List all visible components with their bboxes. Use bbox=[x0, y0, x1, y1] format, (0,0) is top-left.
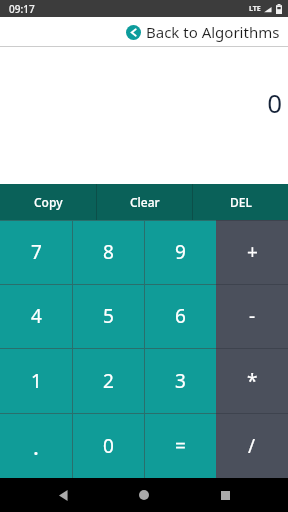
button[interactable]: Back bbox=[47, 478, 81, 512]
staticText: 7 bbox=[31, 239, 42, 265]
button[interactable]: * bbox=[216, 348, 288, 413]
button[interactable]: Back bbox=[118, 20, 288, 44]
button[interactable]: DEL bbox=[193, 184, 288, 220]
staticText: 2 bbox=[103, 368, 114, 394]
staticText: 8 bbox=[103, 239, 114, 265]
other: Back bbox=[126, 25, 141, 40]
button[interactable]: - bbox=[216, 284, 288, 348]
staticText: + bbox=[247, 239, 258, 265]
staticText: 09:17 bbox=[9, 2, 35, 16]
staticText: Back to Algorithms bbox=[146, 22, 280, 42]
staticText: DEL bbox=[230, 194, 252, 210]
button[interactable]: 3 bbox=[144, 348, 216, 413]
button[interactable]: 8 bbox=[72, 220, 144, 284]
staticText: 5 bbox=[103, 303, 114, 329]
staticText: LTE bbox=[249, 4, 261, 14]
button[interactable]: / bbox=[216, 413, 288, 478]
button[interactable]: 5 bbox=[72, 284, 144, 348]
button[interactable]: Recent apps bbox=[208, 478, 242, 512]
button[interactable]: Copy bbox=[0, 184, 96, 220]
button[interactable]: 9 bbox=[144, 220, 216, 284]
button[interactable]: 0 bbox=[72, 413, 144, 478]
button[interactable]: = bbox=[144, 413, 216, 478]
button[interactable]: + bbox=[216, 220, 288, 284]
staticText: = bbox=[175, 433, 186, 459]
staticText: / bbox=[248, 433, 256, 459]
staticText: 3 bbox=[175, 368, 186, 394]
button[interactable]: 2 bbox=[72, 348, 144, 413]
button[interactable]: Clear bbox=[97, 184, 192, 220]
button[interactable]: 1 bbox=[0, 348, 72, 413]
button[interactable]: Home bbox=[127, 478, 161, 512]
button[interactable]: 7 bbox=[0, 220, 72, 284]
staticText: . bbox=[33, 431, 39, 461]
staticText: 1 bbox=[31, 368, 42, 394]
button[interactable]: 4 bbox=[0, 284, 72, 348]
staticText: 0 bbox=[103, 433, 114, 459]
staticText: - bbox=[249, 303, 256, 329]
staticText: Clear bbox=[130, 194, 160, 210]
button[interactable]: . bbox=[0, 413, 72, 478]
button[interactable]: 6 bbox=[144, 284, 216, 348]
staticText: * bbox=[247, 368, 258, 394]
staticText: 9 bbox=[175, 239, 186, 265]
staticText: 0 bbox=[267, 85, 282, 120]
staticText: Copy bbox=[34, 194, 63, 210]
staticText: 4 bbox=[31, 303, 42, 329]
staticText: 6 bbox=[175, 303, 186, 329]
